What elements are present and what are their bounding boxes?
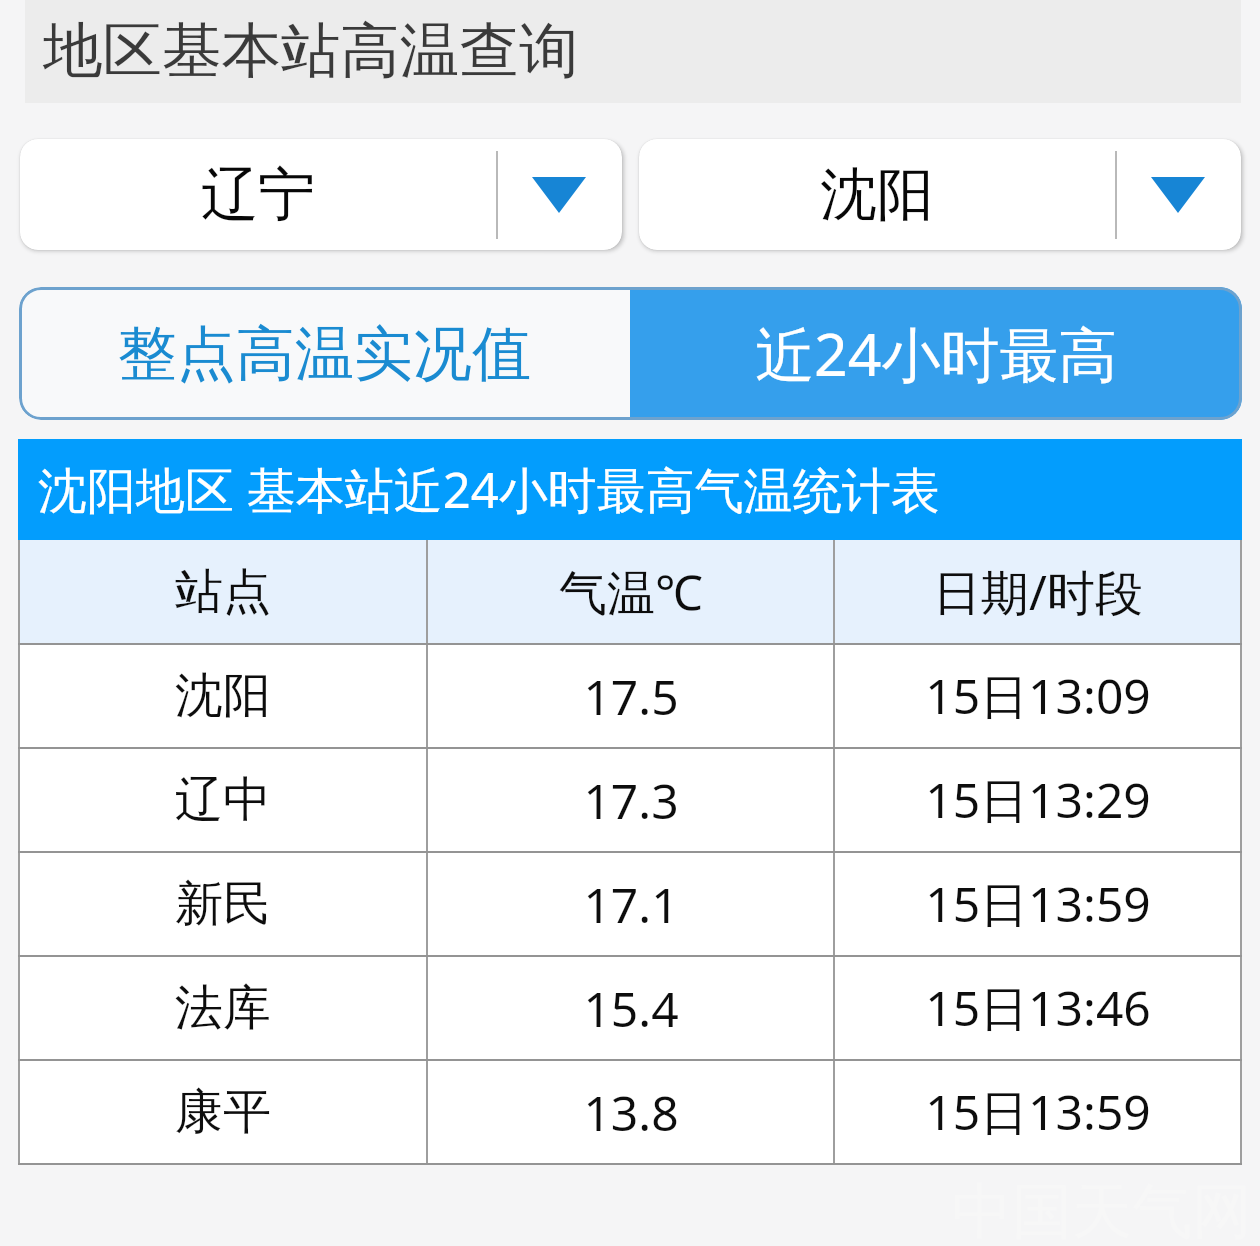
staticText: 整点高温实况值: [118, 317, 531, 391]
button[interactable]: 法库: [18, 957, 1242, 1059]
staticText: 17.1: [583, 872, 679, 937]
staticText: 15日13:29: [925, 767, 1151, 833]
staticText: 沈阳: [820, 159, 934, 231]
staticText: 15日13:46: [925, 975, 1151, 1041]
button[interactable]: 近24小时最高: [630, 287, 1242, 420]
button[interactable]: 选择辽宁: [20, 139, 622, 250]
staticText: 地区基本站高温查询: [43, 14, 579, 89]
staticText: 新民: [175, 874, 271, 934]
staticText: 日期/时段: [933, 559, 1143, 625]
button[interactable]: 沈阳: [18, 645, 1242, 747]
staticText: 15日13:59: [925, 871, 1151, 937]
staticText: 站点: [175, 562, 271, 622]
staticText: 辽中: [175, 770, 271, 830]
staticText: 法库: [175, 978, 271, 1038]
button[interactable]: 新民: [18, 853, 1242, 955]
staticText: 15.4: [583, 976, 679, 1041]
staticText: 17.5: [583, 664, 679, 729]
staticText: 近24小时最高: [755, 313, 1118, 394]
staticText: 13.8: [583, 1080, 679, 1145]
staticText: 沈阳: [175, 666, 271, 726]
button[interactable]: 选择沈阳: [639, 139, 1241, 250]
staticText: 气温℃: [559, 559, 703, 625]
staticText: 辽宁: [201, 159, 315, 231]
button[interactable]: 辽中: [18, 749, 1242, 851]
staticText: 15日13:59: [925, 1079, 1151, 1145]
staticText: 17.3: [583, 768, 679, 833]
staticText: 康平: [175, 1082, 271, 1142]
other: 展开沈阳 下拉列表: [1115, 139, 1241, 250]
staticText: 15日13:09: [925, 663, 1151, 729]
staticText: 沈阳地区 基本站近24小时最高气温统计表: [38, 456, 940, 523]
button[interactable]: 康平: [18, 1061, 1242, 1163]
other: 展开辽宁 下拉列表: [496, 139, 622, 250]
button[interactable]: 整点高温实况值: [19, 287, 630, 420]
